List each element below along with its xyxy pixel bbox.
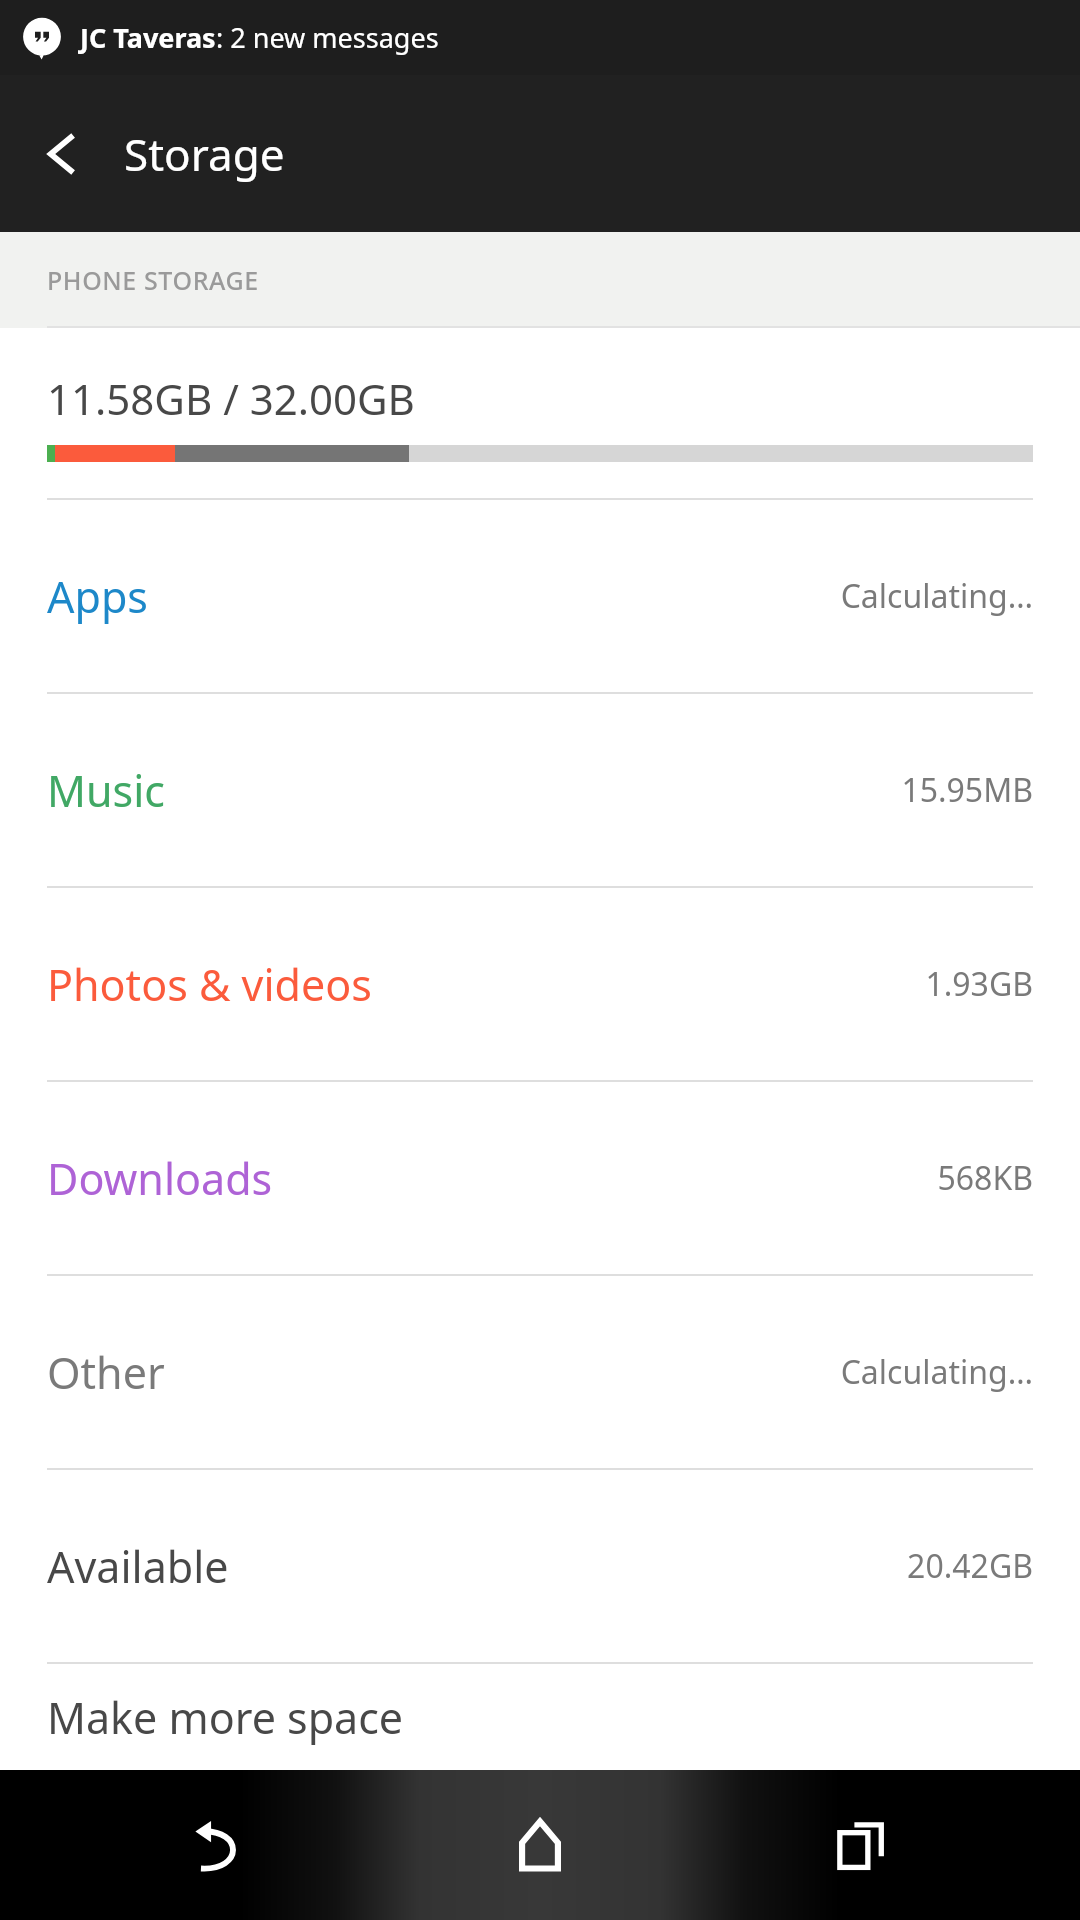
staticText: 568KB [937,1156,1033,1200]
staticText: Downloads [47,1149,273,1208]
staticText: Available [47,1537,229,1596]
button[interactable]: Recent apps [760,1770,960,1920]
button[interactable]: Music [0,694,1080,886]
staticText: PHONE STORAGE [47,263,259,297]
button[interactable]: Photos & videos [0,888,1080,1080]
staticText: Music [47,761,165,820]
staticText: Other [47,1343,165,1402]
staticText: Calculating… [840,574,1033,618]
button[interactable]: Back [24,115,102,193]
staticText: 11.58GB / 32.00GB [47,370,415,427]
button[interactable]: Make more space [0,1664,1080,1770]
button[interactable]: 11.58GB / 32.00GB [0,328,1080,498]
staticText: 20.42GB [907,1544,1033,1588]
staticText: : 2 new messages [216,19,439,56]
button[interactable]: Home [440,1770,640,1920]
staticText: Photos & videos [47,955,372,1014]
staticText: Calculating… [840,1350,1033,1394]
button[interactable]: Back [120,1770,320,1920]
staticText: JC Taveras [80,19,216,56]
button[interactable]: Apps [0,500,1080,692]
staticText: 1.93GB [925,962,1033,1006]
button[interactable]: Downloads [0,1082,1080,1274]
button[interactable]: Other [0,1276,1080,1468]
staticText: Apps [47,567,148,626]
staticText: 15.95MB [901,768,1033,812]
button[interactable]: Available [0,1470,1080,1662]
staticText: Make more space [47,1688,404,1747]
staticText: Storage [124,124,285,184]
